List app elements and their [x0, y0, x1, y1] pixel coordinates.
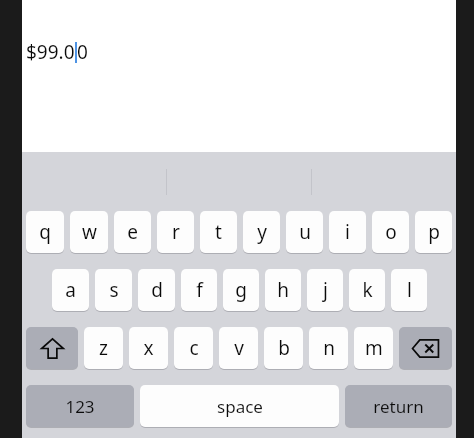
button[interactable]: s: [95, 269, 132, 311]
staticText: i: [345, 219, 350, 245]
button[interactable]: c: [174, 327, 213, 369]
button[interactable]: Shift: [26, 327, 78, 369]
staticText: o: [385, 219, 397, 245]
button[interactable]: d: [138, 269, 175, 311]
button[interactable]: w: [70, 211, 108, 253]
button[interactable]: m: [354, 327, 393, 369]
staticText: return: [373, 395, 424, 418]
staticText: z: [99, 335, 108, 361]
button[interactable]: b: [264, 327, 303, 369]
button[interactable]: k: [349, 269, 385, 311]
button[interactable]: 123: [26, 385, 134, 427]
staticText: s: [109, 277, 119, 303]
button[interactable]: i: [329, 211, 366, 253]
button[interactable]: r: [157, 211, 194, 253]
staticText: j: [323, 277, 328, 303]
staticText: b: [278, 335, 290, 361]
button[interactable]: p: [415, 211, 452, 253]
staticText: l: [407, 277, 412, 303]
staticText: $99.0: [26, 39, 75, 65]
staticText: v: [234, 335, 244, 361]
button[interactable]: e: [114, 211, 151, 253]
staticText: g: [235, 277, 247, 303]
button[interactable]: j: [307, 269, 343, 311]
staticText: k: [362, 277, 373, 303]
staticText: x: [143, 335, 154, 361]
button[interactable]: l: [391, 269, 427, 311]
staticText: p: [428, 219, 440, 245]
button[interactable]: y: [243, 211, 280, 253]
button[interactable]: Backspace: [399, 327, 452, 369]
button[interactable]: z: [84, 327, 123, 369]
button[interactable]: a: [52, 269, 89, 311]
staticText: t: [215, 219, 222, 245]
staticText: d: [151, 277, 163, 303]
staticText: a: [65, 277, 76, 303]
staticText: c: [189, 335, 199, 361]
button[interactable]: f: [181, 269, 217, 311]
staticText: f: [196, 277, 203, 303]
staticText: q: [39, 219, 51, 245]
button[interactable]: n: [309, 327, 348, 369]
staticText: m: [365, 335, 383, 361]
staticText: r: [172, 219, 180, 245]
button[interactable]: u: [286, 211, 323, 253]
staticText: n: [323, 335, 335, 361]
staticText: u: [299, 219, 311, 245]
button[interactable]: return: [345, 385, 452, 427]
button[interactable]: o: [372, 211, 409, 253]
staticText: y: [257, 219, 267, 245]
staticText: e: [127, 219, 138, 245]
staticText: h: [277, 277, 289, 303]
button[interactable]: t: [200, 211, 237, 253]
button[interactable]: v: [219, 327, 258, 369]
button[interactable]: g: [223, 269, 259, 311]
staticText: 0: [77, 39, 88, 65]
button[interactable]: space: [140, 385, 339, 427]
staticText: 123: [65, 395, 95, 418]
button[interactable]: $99.0: [22, 0, 456, 152]
staticText: space: [217, 395, 263, 418]
button[interactable]: x: [129, 327, 168, 369]
staticText: w: [82, 219, 97, 245]
button[interactable]: q: [26, 211, 64, 253]
button[interactable]: h: [265, 269, 301, 311]
